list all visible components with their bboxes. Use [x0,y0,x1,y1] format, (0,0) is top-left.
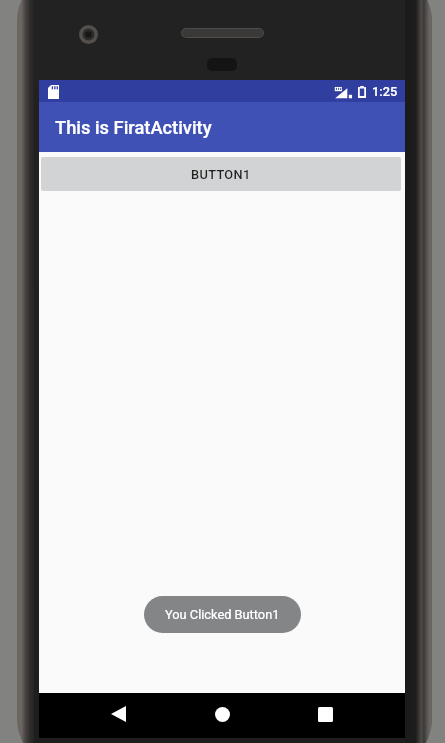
staticText: You Clicked Button1 [165,607,280,622]
button[interactable]: Back [96,692,140,736]
staticText: 1:25 [372,84,398,99]
staticText: BUTTON1 [191,167,251,182]
button[interactable]: Home [200,692,244,736]
button[interactable]: Recent apps [303,692,347,736]
button[interactable]: BUTTON1 [41,157,401,191]
staticText: This is FiratActivity [55,117,212,138]
